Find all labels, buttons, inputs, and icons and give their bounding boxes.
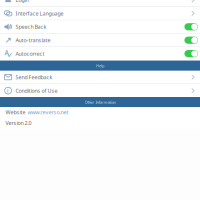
staticText: Version 2.0 (6, 119, 32, 126)
button[interactable]: Speech Back (0, 20, 200, 33)
staticText: Autocorrect (15, 50, 44, 57)
staticText: Login (15, 0, 28, 4)
staticText: Conditions of Use (15, 87, 57, 94)
button[interactable]: A (0, 47, 200, 60)
staticText: Send Feedback (15, 74, 52, 81)
staticText: Speech Back (15, 23, 46, 30)
button[interactable]: Send Feedback (0, 71, 200, 84)
staticText: Interface Language (15, 10, 63, 17)
button[interactable]: www.reverso.net (28, 109, 69, 116)
staticText: Website (6, 109, 26, 116)
staticText: Help (96, 63, 104, 68)
button[interactable]: Interface Language (0, 7, 200, 20)
button[interactable]: Login (0, 0, 200, 6)
button[interactable]: i (0, 84, 200, 97)
button[interactable]: Auto-translate (0, 34, 200, 47)
staticText: www.reverso.net (28, 109, 69, 116)
staticText: Other Information (84, 99, 115, 105)
staticText: i (7, 87, 9, 94)
staticText: Auto-translate (15, 37, 50, 44)
staticText: A (5, 48, 9, 57)
